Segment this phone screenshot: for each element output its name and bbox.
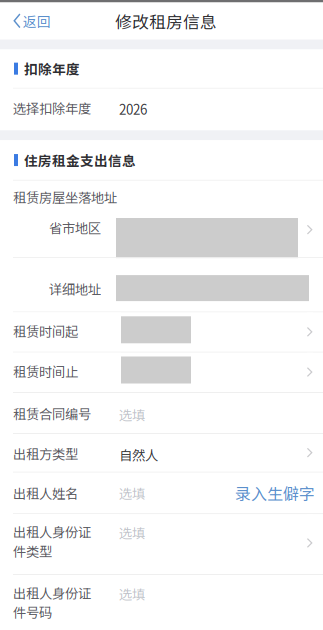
button[interactable]: 租赁时间止	[0, 353, 323, 392]
staticText: 租赁房屋坐落地址	[13, 187, 117, 206]
staticText: 选填	[119, 523, 145, 542]
staticText: 出租人身份证 件号码	[13, 583, 91, 622]
staticText: 出租方类型	[13, 444, 78, 463]
staticText: 修改租房信息	[115, 9, 217, 33]
staticText: 省市地区	[49, 218, 101, 237]
staticText: 选填	[119, 483, 145, 503]
button[interactable]: 出租方类型	[0, 434, 323, 472]
staticText: 租赁合同编号	[13, 404, 91, 423]
button[interactable]: 录入生僻字	[223, 473, 323, 513]
staticText: 2026	[119, 99, 147, 119]
button[interactable]: 出租人身份证 件号码	[0, 575, 323, 630]
staticText: 详细地址	[49, 279, 101, 298]
button[interactable]: 租赁合同编号	[0, 393, 323, 433]
staticText: 返回	[23, 11, 51, 31]
staticText: 出租人身份证 件类型	[13, 522, 91, 560]
staticText: 自然人	[119, 445, 158, 464]
staticText: 出租人姓名	[13, 483, 78, 503]
button[interactable]: 返回	[0, 2, 61, 39]
staticText: 选填	[119, 405, 145, 424]
staticText: 租赁时间起	[13, 321, 78, 341]
staticText: 选填	[119, 584, 145, 603]
button[interactable]: 省市地区	[0, 213, 323, 257]
staticText: 住房租金支出信息	[24, 150, 136, 170]
staticText: 扣除年度	[24, 59, 80, 78]
button[interactable]: 详细地址	[0, 258, 323, 311]
button[interactable]: 租赁时间起	[0, 312, 323, 352]
staticText: 选择扣除年度	[13, 98, 91, 118]
button[interactable]: 出租人身份证 件类型	[0, 514, 323, 574]
staticText: 录入生僻字	[235, 481, 315, 505]
button[interactable]: 选择扣除年度	[0, 89, 323, 130]
staticText: 租赁时间止	[13, 361, 78, 381]
